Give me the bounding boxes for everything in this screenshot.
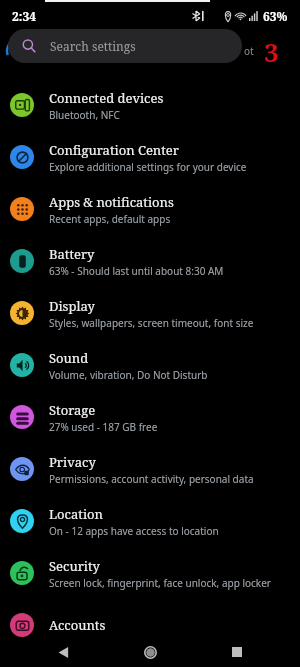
staticText: Apps & notifications [49,193,174,211]
staticText: Bluetooth, NFC [49,108,120,122]
staticText: ot [244,44,254,58]
button[interactable]: Privacy [0,443,300,495]
staticText: Location [49,505,103,523]
staticText: Accounts [49,616,106,634]
button[interactable]: Sound [0,339,300,391]
staticText: On - 12 apps have access to location [49,524,219,538]
button[interactable]: Configuration Center [0,131,300,183]
button[interactable]: Accounts [0,599,300,651]
staticText: Explore additional settings for your dev… [49,160,247,174]
button[interactable]: Back [48,637,78,667]
staticText: Display [49,297,95,315]
staticText: Security [49,557,100,575]
staticText: Privacy [49,453,96,471]
button[interactable]: Location [0,495,300,547]
staticText: Storage [49,401,96,419]
staticText: 3 [264,34,279,69]
button[interactable]: Recent apps [222,637,252,667]
button[interactable]: Security [0,547,300,599]
button[interactable]: Storage [0,391,300,443]
staticText: Configuration Center [49,141,179,159]
button[interactable]: Battery [0,235,300,287]
staticText: Styles, wallpapers, screen timeout, font… [49,316,254,330]
staticText: Battery [49,245,95,263]
staticText: Sound [49,349,89,367]
staticText: Recent apps, default apps [49,212,171,226]
staticText: 2:34 [12,8,36,24]
button[interactable]: Display [0,287,300,339]
staticText: Permissions, account activity, personal … [49,472,254,486]
staticText: 27% used - 187 GB free [49,420,158,434]
staticText: Connected devices [49,89,164,107]
staticText: Screen lock, fingerprint, face unlock, a… [49,576,271,590]
staticText: Search settings [50,38,136,54]
button[interactable]: Search settings [8,29,242,63]
staticText: Volume, vibration, Do Not Disturb [49,368,208,382]
button[interactable]: Home [135,637,165,667]
staticText: 63% - Should last until about 8:30 AM [49,264,224,278]
button[interactable]: Connected devices [0,79,300,131]
button[interactable]: Apps & notifications [0,183,300,235]
staticText: 63% [263,8,288,24]
